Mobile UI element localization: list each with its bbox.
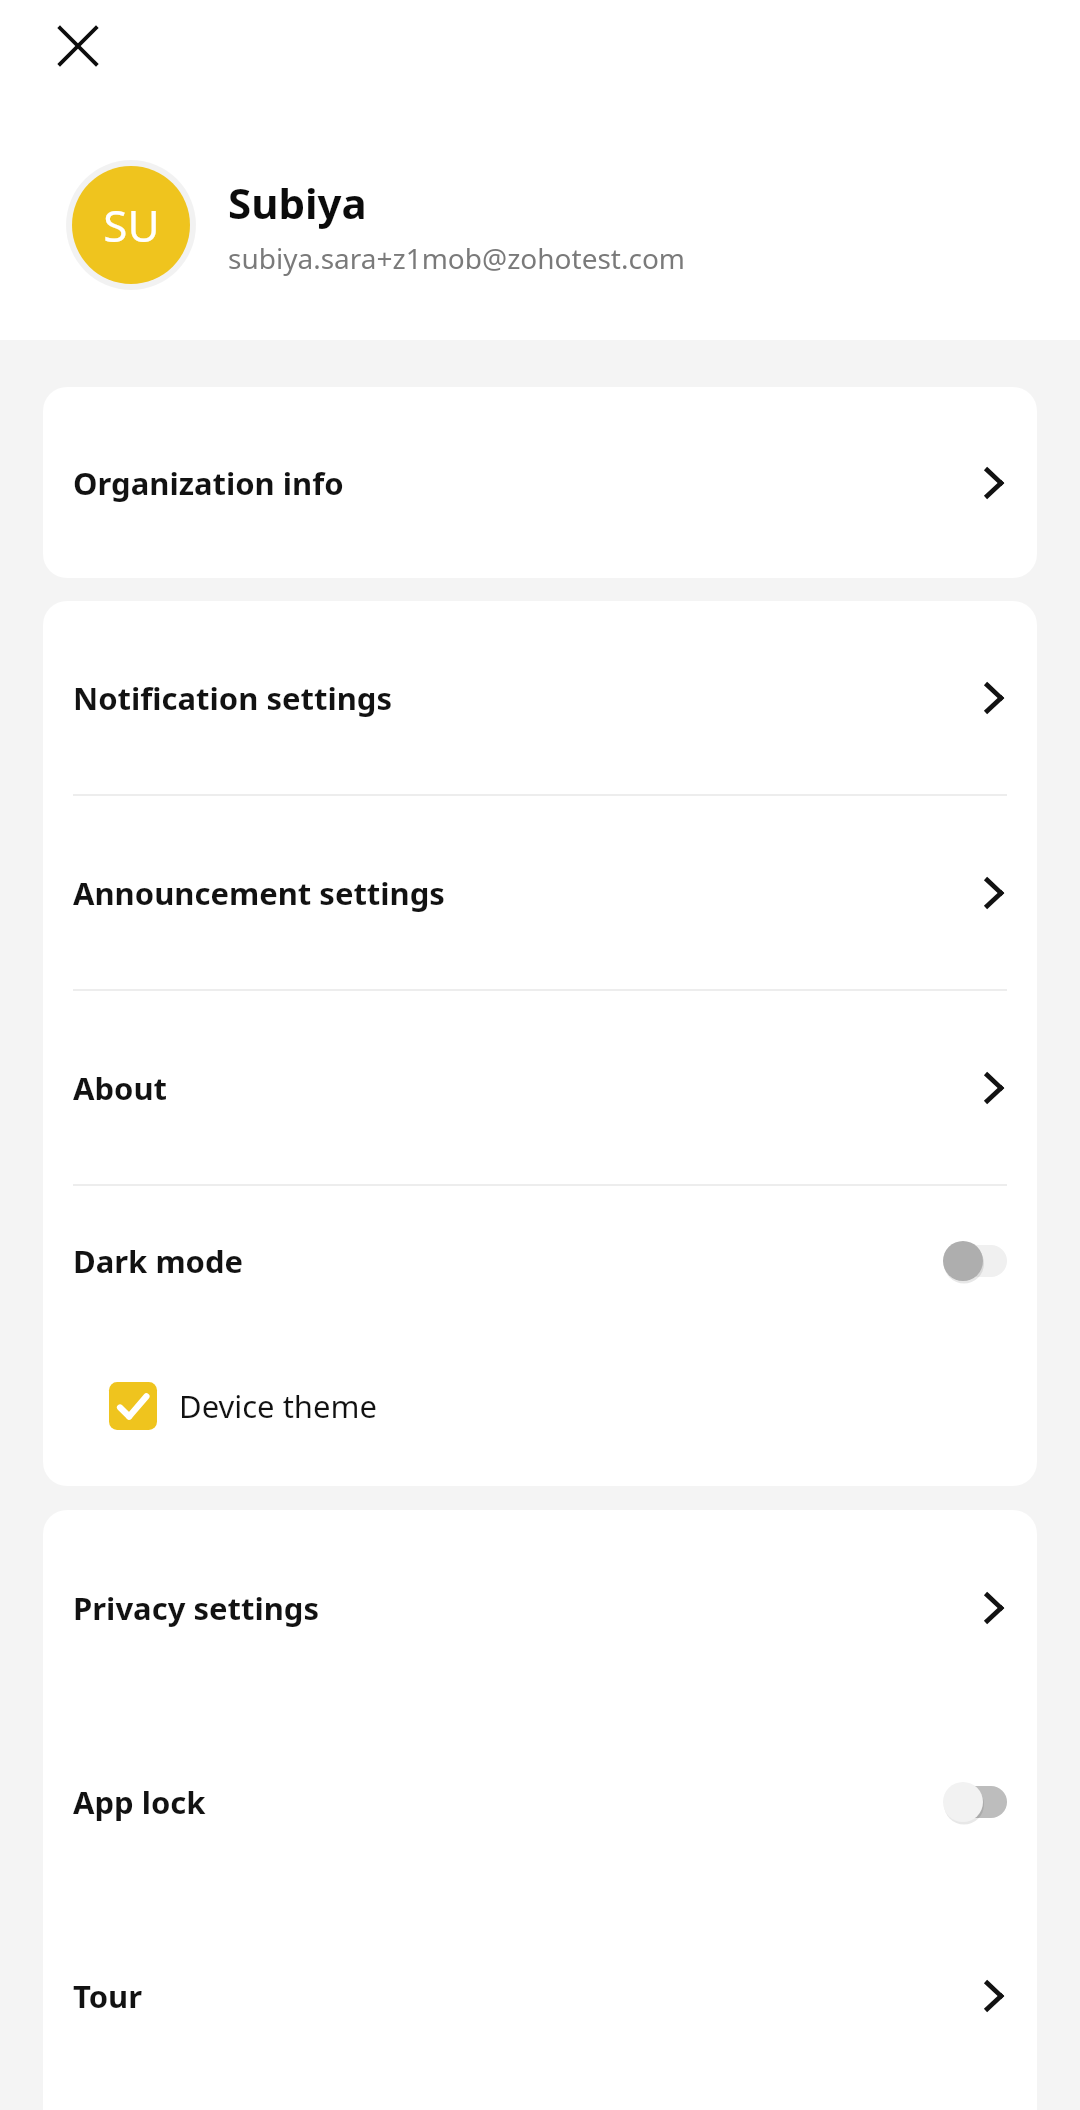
other: Notification settings [977,680,1007,716]
button[interactable]: Close [44,12,112,80]
staticText: subiya.sara+z1mob@zohotest.com [228,239,686,277]
button[interactable]: Notification settings [43,601,1037,794]
staticText: Organization info [73,462,344,504]
other: Organization info [977,465,1007,501]
staticText: Notification settings [73,677,392,719]
button[interactable]: SU [0,160,1080,290]
button[interactable]: Announcement settings [43,796,1037,989]
staticText: About [73,1067,168,1109]
other: About [977,1070,1007,1106]
button[interactable]: Tour [43,1898,1037,2094]
staticText: Dark mode [73,1240,244,1282]
button[interactable]: App lock [43,1706,1037,1898]
staticText: Privacy settings [73,1587,319,1629]
button[interactable]: Dark mode [43,1186,1037,1336]
other: Announcement settings [977,875,1007,911]
staticText: Tour [73,1975,143,2017]
staticText: Announcement settings [73,872,445,914]
button[interactable]: Organization info [43,387,1037,578]
staticText: App lock [73,1781,206,1823]
other: Tour [977,1978,1007,2014]
button[interactable]: About [43,991,1037,1184]
other: Privacy settings [977,1590,1007,1626]
button[interactable]: Privacy settings [43,1510,1037,1706]
other: Dark mode toggle [943,1241,1007,1281]
button[interactable]: Device theme [43,1336,1037,1476]
staticText: SU [103,195,160,255]
staticText: Device theme [179,1385,377,1427]
staticText: Subiya [228,174,367,231]
other: App lock toggle [943,1782,1007,1822]
